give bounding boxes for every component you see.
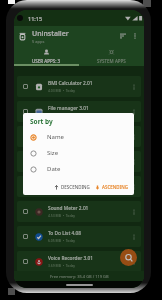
button[interactable]: Item menu — [130, 258, 138, 266]
staticText: Free memory: 35.4 GB / 119 GB — [50, 274, 109, 279]
button[interactable]: Sound Meter 2.01 — [17, 201, 141, 222]
staticText: 4.03 MB • Today — [48, 88, 76, 93]
button[interactable]: Item menu — [130, 233, 138, 241]
button[interactable]: BMI Calculator 2.01 — [17, 76, 141, 97]
staticText: Sort by — [30, 117, 53, 126]
button[interactable]: Size — [30, 145, 134, 161]
button[interactable]: Item menu — [130, 183, 138, 191]
button[interactable]: Uninstaller — [18, 32, 27, 41]
staticText: 2.10 MB • Today — [48, 138, 76, 143]
staticText: ASCENDING — [102, 184, 128, 190]
button[interactable]: Item menu — [130, 83, 138, 91]
staticText: Name — [47, 133, 64, 141]
button[interactable]: Search — [120, 249, 137, 266]
staticText: 4.53 MB • Today — [48, 213, 76, 218]
staticText: Notes 1.11 — [48, 180, 73, 187]
staticText: To Do List 4.08 — [48, 230, 82, 237]
button[interactable]: Item menu — [130, 158, 138, 166]
staticText: Voice Recorder 3.01 — [48, 255, 93, 262]
staticText: USER APPS: 3 — [32, 58, 61, 64]
button[interactable]: ASCENDING — [95, 183, 128, 191]
button[interactable]: Date — [30, 161, 134, 177]
button[interactable]: Notes 1.11 — [17, 176, 141, 197]
button[interactable]: Calculator 1.20 — [17, 126, 141, 147]
staticText: DESCENDING — [61, 184, 90, 190]
button[interactable]: Name — [30, 129, 134, 145]
button[interactable]: Item menu — [130, 133, 138, 141]
button[interactable]: Compass 2.00 — [17, 151, 141, 172]
button[interactable]: Sort — [118, 31, 128, 41]
button[interactable]: Item menu — [130, 208, 138, 216]
button[interactable]: Item menu — [130, 108, 138, 116]
staticText: 1.80 MB • Today — [48, 163, 76, 168]
staticText: SYSTEM APPS — [97, 58, 126, 64]
staticText: Calculator 1.20 — [48, 130, 83, 137]
staticText: Sound Meter 2.01 — [48, 205, 89, 212]
staticText: File manager 3.01 — [48, 105, 89, 112]
button[interactable]: To Do List 4.08 — [17, 226, 141, 247]
button[interactable]: File manager 3.01 — [17, 101, 141, 122]
button[interactable]: SYSTEM APPS — [79, 46, 144, 66]
button[interactable]: USER APPS: 3 — [14, 46, 79, 66]
staticText: 11:15 — [28, 15, 43, 22]
button[interactable]: DESCENDING — [54, 183, 90, 191]
staticText: 6.05 MB • Today — [48, 238, 76, 243]
staticText: BMI Calculator 2.01 — [48, 80, 93, 87]
button[interactable]: More options — [130, 31, 140, 41]
staticText: Uninstaller — [32, 29, 69, 39]
button[interactable]: Voice Recorder 3.01 — [17, 251, 141, 272]
staticText: Date — [47, 165, 61, 173]
staticText: 3.69 MB • Today — [48, 263, 76, 268]
staticText: 5 apps — [32, 39, 45, 44]
staticText: 3.30 MB • Today — [48, 188, 76, 193]
staticText: Size — [47, 149, 59, 157]
